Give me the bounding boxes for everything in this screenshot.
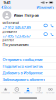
button[interactable]: Добавить в Избранное — [0, 69, 56, 76]
staticText: 9:41 — [3, 0, 10, 5]
staticText: Автоответ — [46, 92, 55, 94]
staticText: Иван Петров — [14, 13, 39, 18]
button[interactable]: Сообщение — [42, 22, 49, 30]
staticText: Все — [4, 5, 11, 10]
button[interactable]: рингтон — [0, 39, 56, 47]
button[interactable]: Сообщение — [42, 30, 49, 38]
staticText: +7 912 345-67-89 — [2, 25, 30, 30]
button[interactable]: Клавиши — [34, 86, 45, 95]
staticText: Поделиться контактом — [2, 63, 43, 69]
staticText: Отправить сообщение — [2, 57, 42, 62]
staticText: Клавиши — [36, 92, 43, 94]
button[interactable]: Заблокировать абонента — [0, 76, 56, 83]
button[interactable]: Контакты — [22, 86, 34, 95]
button[interactable]: Вызов — [49, 22, 55, 30]
button[interactable]: Вызов — [49, 30, 55, 38]
button[interactable]: Изменить — [35, 5, 56, 10]
staticText: Изменить — [36, 5, 54, 10]
staticText: По умолчанию — [2, 42, 28, 47]
button[interactable]: Отправить сообщение — [0, 56, 56, 63]
button[interactable]: Автоответ — [45, 86, 56, 95]
staticText: домашний — [2, 30, 17, 33]
button[interactable]: Все — [0, 5, 12, 10]
staticText: Заблокировать абонента — [2, 77, 45, 82]
staticText: рингтон — [2, 38, 14, 42]
staticText: Избранные — [1, 92, 10, 94]
staticText: мобильный — [2, 21, 19, 25]
button[interactable]: Недавние — [11, 86, 22, 95]
staticText: +7 495 123-45-67 — [2, 33, 30, 39]
staticText: Недавние — [13, 92, 21, 94]
button[interactable]: Поделиться контактом — [0, 63, 56, 69]
staticText: Добавить в Избранное — [2, 70, 42, 75]
button[interactable]: Избранные — [0, 86, 11, 95]
staticText: Контакты — [24, 92, 32, 94]
